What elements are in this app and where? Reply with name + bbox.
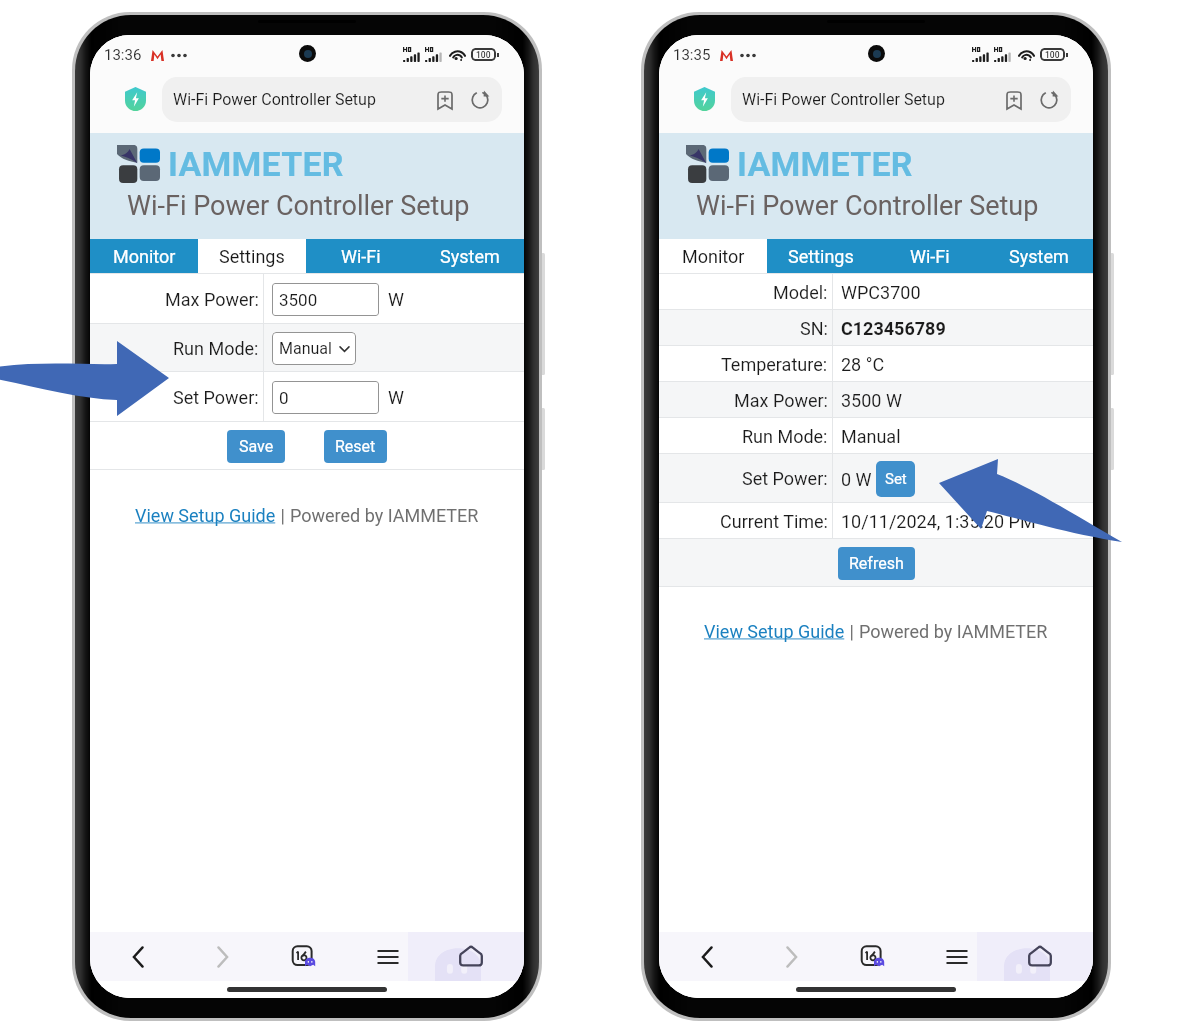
staticText: Run Mode: xyxy=(742,426,828,447)
button[interactable]: Reset xyxy=(324,430,387,463)
staticText: System xyxy=(440,246,500,267)
button[interactable]: 3500 xyxy=(272,283,379,316)
staticText: Manual xyxy=(841,426,901,447)
button[interactable]: Manual xyxy=(272,332,356,365)
button[interactable]: Forward xyxy=(752,932,830,981)
button[interactable]: Wi-Fi xyxy=(306,239,415,273)
button[interactable]: Home xyxy=(432,932,510,981)
staticText: 100 xyxy=(1045,50,1060,60)
staticText: Wi-Fi Power Controller Setup xyxy=(742,90,945,109)
button[interactable]: Monitor xyxy=(659,239,767,273)
staticText: Set Power: xyxy=(742,468,828,489)
button[interactable]: Forward xyxy=(183,932,261,981)
button[interactable]: Home xyxy=(1001,932,1079,981)
staticText: IAMMETER xyxy=(737,144,913,184)
staticText: 3500 xyxy=(279,290,318,310)
button[interactable]: Reload page xyxy=(1036,87,1062,113)
staticText: 0 W xyxy=(841,469,872,490)
staticText: Powered by IAMMETER xyxy=(290,505,479,526)
button[interactable]: Site security xyxy=(111,82,159,116)
staticText: Max Power: xyxy=(734,390,828,411)
button[interactable]: Tabs xyxy=(266,932,344,981)
staticText: Model: xyxy=(773,282,828,303)
staticText: WPC3700 xyxy=(841,282,921,303)
staticText: Set Power: xyxy=(173,387,259,408)
staticText: Set xyxy=(885,470,907,488)
button[interactable]: Back xyxy=(669,932,747,981)
staticText: Save xyxy=(239,437,274,456)
staticText: C123456789 xyxy=(841,318,946,339)
staticText: 28 °C xyxy=(841,354,885,375)
button[interactable]: Reload page xyxy=(467,87,493,113)
button[interactable]: Wi-Fi Power Controller Setup xyxy=(731,77,1071,122)
staticText: 0 xyxy=(279,388,289,408)
staticText: System xyxy=(1009,246,1069,267)
button[interactable]: Menu xyxy=(918,932,996,981)
button[interactable]: Back xyxy=(100,932,178,981)
button[interactable]: View Setup Guide xyxy=(135,505,276,526)
button[interactable]: Set xyxy=(876,461,915,497)
staticText: Wi-Fi xyxy=(910,246,950,267)
button[interactable]: Wi-Fi Power Controller Setup xyxy=(162,77,502,122)
staticText: Monitor xyxy=(113,246,176,267)
staticText: Settings xyxy=(219,246,285,267)
staticText: 3500 W xyxy=(841,390,902,411)
button[interactable]: Add bookmark xyxy=(1001,87,1027,113)
button[interactable]: Tabs xyxy=(835,932,913,981)
button[interactable]: Settings xyxy=(767,239,875,273)
staticText: Max Power: xyxy=(165,289,259,310)
button[interactable]: Settings xyxy=(198,239,306,273)
staticText: W xyxy=(388,289,404,310)
button[interactable]: Save xyxy=(227,430,285,463)
button[interactable]: System xyxy=(984,239,1093,273)
staticText: 10/11/2024, 1:35:20 PM xyxy=(841,511,1036,532)
staticText: | xyxy=(845,621,859,642)
staticText: SN: xyxy=(800,318,828,339)
staticText: Powered by IAMMETER xyxy=(859,621,1048,642)
staticText: Monitor xyxy=(682,246,745,267)
button[interactable]: Site security xyxy=(680,82,728,116)
staticText: Refresh xyxy=(849,554,904,573)
staticText: Run Mode: xyxy=(173,338,259,359)
button[interactable]: Refresh xyxy=(838,547,915,580)
staticText: Temperature: xyxy=(721,354,828,375)
staticText: Wi-Fi xyxy=(341,246,381,267)
staticText: Settings xyxy=(788,246,854,267)
staticText: | xyxy=(276,505,290,526)
staticText: Wi-Fi Power Controller Setup xyxy=(696,190,1039,222)
button[interactable]: View Setup Guide xyxy=(704,621,845,642)
staticText: 13:35 xyxy=(673,46,711,64)
staticText: 100 xyxy=(476,50,491,60)
button[interactable]: Monitor xyxy=(90,239,198,273)
staticText: W xyxy=(388,387,404,408)
staticText: Current Time: xyxy=(720,511,828,532)
staticText: Reset xyxy=(335,437,376,456)
button[interactable]: Add bookmark xyxy=(432,87,458,113)
button[interactable]: Menu xyxy=(349,932,427,981)
button[interactable]: 0 xyxy=(272,381,379,414)
button[interactable]: System xyxy=(415,239,524,273)
staticText: IAMMETER xyxy=(168,144,344,184)
button[interactable]: Wi-Fi xyxy=(875,239,984,273)
staticText: Manual xyxy=(279,339,332,358)
staticText: Wi-Fi Power Controller Setup xyxy=(127,190,470,222)
staticText: Wi-Fi Power Controller Setup xyxy=(173,90,376,109)
staticText: 13:36 xyxy=(104,46,142,64)
